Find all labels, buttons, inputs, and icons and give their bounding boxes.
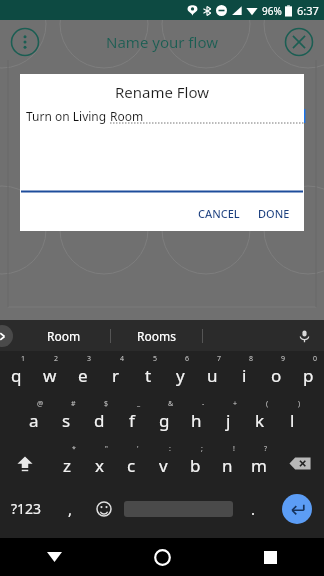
- staticText: y: [176, 364, 185, 387]
- staticText: ;: [201, 444, 203, 454]
- button[interactable]: Emoji: [87, 486, 121, 531]
- button[interactable]: Voice input: [292, 324, 316, 348]
- button[interactable]: Rooms: [111, 320, 202, 351]
- staticText: #: [71, 399, 76, 409]
- staticText: w: [43, 364, 57, 387]
- staticText: Room: [110, 108, 144, 124]
- staticText: 2: [54, 354, 59, 364]
- button[interactable]: r: [99, 351, 132, 396]
- staticText: d: [94, 409, 105, 432]
- staticText: ,: [68, 499, 73, 519]
- button[interactable]: i: [228, 351, 260, 396]
- button[interactable]: More suggestions: [0, 325, 13, 347]
- button[interactable]: Home: [108, 538, 216, 576]
- button[interactable]: Space: [121, 486, 236, 531]
- staticText: g: [159, 409, 170, 432]
- button[interactable]: Back: [0, 538, 108, 576]
- staticText: m: [251, 454, 267, 477]
- button[interactable]: n: [211, 441, 243, 486]
- button[interactable]: p: [292, 351, 324, 396]
- staticText: DONE: [258, 206, 290, 221]
- staticText: Rename Flow: [20, 82, 304, 102]
- button[interactable]: k: [244, 396, 276, 441]
- button[interactable]: .: [236, 486, 270, 531]
- button[interactable]: Backspace: [275, 441, 324, 486]
- button[interactable]: Shift: [0, 441, 50, 486]
- button[interactable]: o: [260, 351, 292, 396]
- staticText: !: [233, 444, 235, 454]
- button[interactable]: y: [164, 351, 196, 396]
- staticText: &: [168, 399, 174, 409]
- button[interactable]: More options: [10, 27, 40, 57]
- button[interactable]: w: [33, 351, 66, 396]
- button[interactable]: l: [276, 396, 308, 441]
- button[interactable]: Turn on Living: [20, 108, 304, 126]
- staticText: *: [72, 444, 76, 454]
- button[interactable]: Close: [284, 27, 314, 57]
- staticText: +: [233, 399, 238, 409]
- staticText: Room: [47, 328, 81, 344]
- button[interactable]: z: [50, 441, 83, 486]
- button[interactable]: h: [180, 396, 212, 441]
- button[interactable]: m: [243, 441, 275, 486]
- staticText: r: [112, 364, 120, 387]
- staticText: (: [266, 399, 269, 409]
- button[interactable]: CANCEL: [192, 202, 246, 225]
- staticText: 1: [21, 354, 26, 364]
- button[interactable]: c: [115, 441, 147, 486]
- staticText: k: [255, 409, 265, 432]
- staticText: q: [11, 364, 22, 387]
- button[interactable]: v: [147, 441, 179, 486]
- staticText: 5: [153, 354, 158, 364]
- button[interactable]: a: [17, 396, 50, 441]
- button[interactable]: b: [179, 441, 211, 486]
- button[interactable]: u: [196, 351, 228, 396]
- button[interactable]: e: [66, 351, 99, 396]
- staticText: ?123: [11, 499, 42, 518]
- staticText: t: [145, 364, 152, 387]
- button[interactable]: t: [132, 351, 164, 396]
- staticText: s: [62, 409, 71, 432]
- staticText: 3: [87, 354, 92, 364]
- button[interactable]: j: [212, 396, 244, 441]
- staticText: z: [63, 454, 71, 477]
- staticText: $: [104, 399, 109, 409]
- staticText: .: [251, 499, 256, 519]
- staticText: u: [207, 364, 218, 387]
- staticText: ?: [264, 444, 268, 454]
- button[interactable]: g: [148, 396, 180, 441]
- staticText: 4: [120, 354, 125, 364]
- staticText: n: [222, 454, 233, 477]
- button[interactable]: f: [116, 396, 148, 441]
- button[interactable]: d: [83, 396, 116, 441]
- staticText: o: [271, 364, 282, 387]
- staticText: ': [137, 444, 139, 454]
- staticText: CANCEL: [198, 206, 240, 221]
- staticText: 6:37: [297, 3, 319, 18]
- staticText: p: [303, 364, 314, 387]
- button[interactable]: Room: [18, 320, 110, 351]
- staticText: :: [169, 444, 171, 454]
- staticText: f: [129, 409, 135, 432]
- staticText: a: [29, 409, 39, 432]
- staticText: h: [191, 409, 202, 432]
- staticText: 7: [217, 354, 222, 364]
- button[interactable]: Enter: [270, 486, 324, 531]
- button[interactable]: x: [83, 441, 115, 486]
- staticText: i: [242, 364, 247, 387]
- button[interactable]: Recent apps: [216, 538, 324, 576]
- staticText: 8: [249, 354, 254, 364]
- staticText: v: [159, 454, 168, 477]
- staticText: @: [37, 399, 44, 409]
- button[interactable]: ?123: [0, 486, 53, 531]
- button[interactable]: s: [50, 396, 83, 441]
- staticText: 0: [313, 354, 318, 364]
- button[interactable]: ,: [53, 486, 87, 531]
- staticText: 6: [185, 354, 190, 364]
- staticText: ): [298, 399, 301, 409]
- button[interactable]: q: [0, 351, 33, 396]
- staticText: 9: [281, 354, 286, 364]
- staticText: Turn on Living: [26, 108, 110, 124]
- button[interactable]: DONE: [252, 202, 296, 225]
